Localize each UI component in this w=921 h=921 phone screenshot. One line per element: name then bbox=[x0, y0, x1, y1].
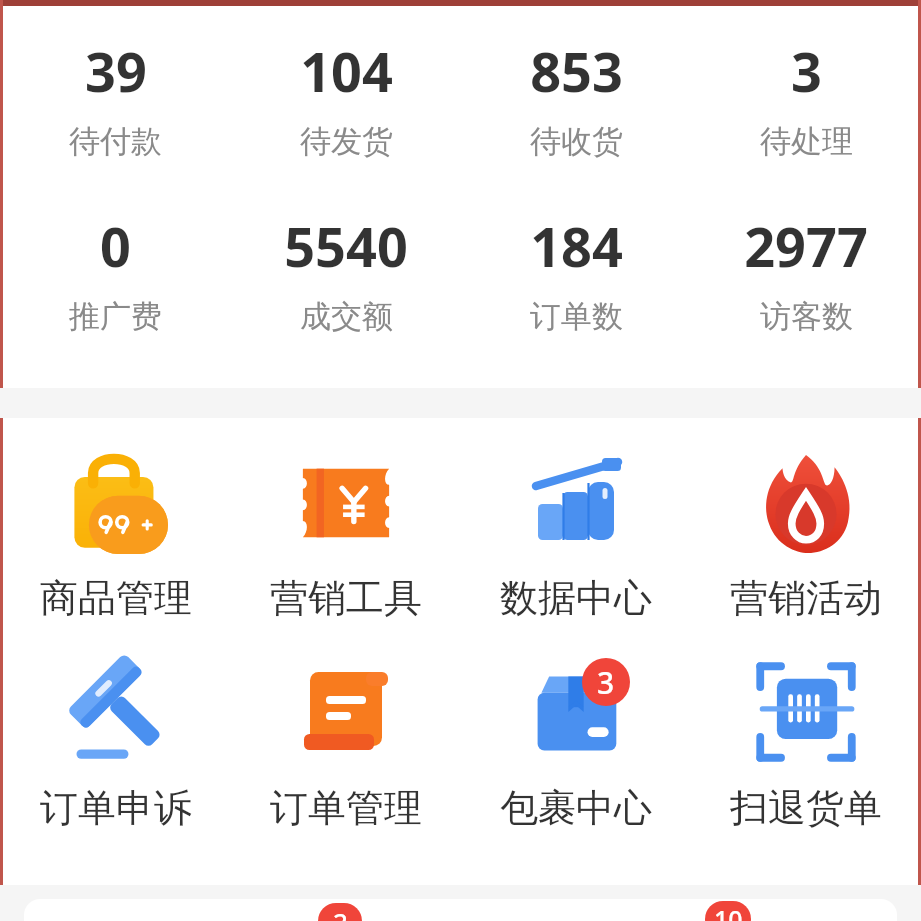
button[interactable]: 订单申诉 bbox=[0, 652, 231, 836]
staticText: 推广费 bbox=[69, 297, 162, 336]
staticText: 2977 bbox=[744, 209, 868, 283]
button[interactable]: 39 bbox=[0, 34, 231, 161]
staticText: 订单申诉 bbox=[40, 784, 192, 832]
staticText: 订单数 bbox=[530, 297, 623, 336]
staticText: 待付款 bbox=[69, 122, 162, 161]
button[interactable]: 订单管理 bbox=[231, 652, 461, 836]
button[interactable]: 0 bbox=[0, 209, 231, 336]
staticText: 成交额 bbox=[300, 297, 393, 336]
staticText: 0 bbox=[100, 209, 131, 283]
staticText: 10 bbox=[714, 902, 743, 921]
staticText: 5540 bbox=[284, 209, 408, 283]
button[interactable]: 数据中心 bbox=[461, 442, 691, 626]
button[interactable]: 853 bbox=[461, 34, 691, 161]
staticText: 3 bbox=[597, 662, 615, 703]
button[interactable]: 5540 bbox=[231, 209, 461, 336]
staticText: 104 bbox=[300, 34, 393, 108]
staticText: 39 bbox=[85, 34, 147, 108]
button[interactable]: 184 bbox=[461, 209, 691, 336]
other: 订单申诉 bbox=[64, 660, 168, 764]
staticText: 数据中心 bbox=[500, 574, 652, 622]
staticText: 3 bbox=[791, 34, 822, 108]
other: 扫退货单 bbox=[754, 660, 858, 764]
other: 营销工具 bbox=[297, 453, 395, 551]
other: 订单管理 bbox=[296, 662, 396, 762]
other: 包裹中心 bbox=[528, 664, 624, 760]
staticText: 待收货 bbox=[530, 122, 623, 161]
button[interactable]: 2977 bbox=[691, 209, 921, 336]
other: 数据中心 bbox=[526, 452, 626, 552]
staticText: 营销工具 bbox=[270, 574, 422, 622]
staticText: 商品管理 bbox=[40, 574, 192, 622]
button[interactable]: 扫退货单 bbox=[691, 652, 921, 836]
staticText: 184 bbox=[530, 209, 623, 283]
staticText: 营销活动 bbox=[730, 574, 882, 622]
staticText: 访客数 bbox=[760, 297, 853, 336]
button[interactable]: 商品管理 bbox=[0, 442, 231, 626]
button[interactable]: 104 bbox=[231, 34, 461, 161]
button[interactable]: 包裹中心 bbox=[461, 652, 691, 836]
staticText: 853 bbox=[530, 34, 623, 108]
staticText: 包裹中心 bbox=[500, 784, 652, 832]
staticText: 待发货 bbox=[300, 122, 393, 161]
button[interactable]: 营销工具 bbox=[231, 442, 461, 626]
staticText: 订单管理 bbox=[270, 784, 422, 832]
button[interactable]: 3 bbox=[691, 34, 921, 161]
other: 营销活动 bbox=[755, 451, 857, 553]
staticText: 待处理 bbox=[760, 122, 853, 161]
button[interactable]: 营销活动 bbox=[691, 442, 921, 626]
staticText: 2 bbox=[333, 904, 348, 921]
other: 商品管理 bbox=[64, 450, 168, 554]
staticText: 扫退货单 bbox=[730, 784, 882, 832]
